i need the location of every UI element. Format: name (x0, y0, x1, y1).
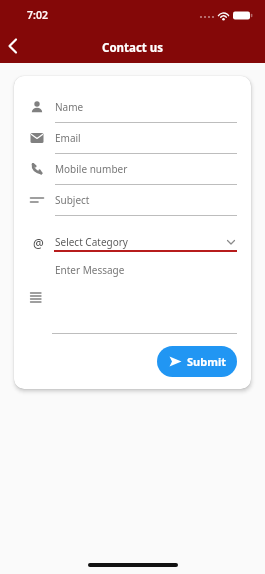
staticText: Enter Message (55, 263, 125, 277)
button[interactable]: Enter Message (30, 252, 237, 334)
staticText: Name (55, 100, 84, 114)
staticText: Submit (187, 354, 226, 369)
staticText: Email (55, 131, 81, 145)
button[interactable]: Mobile number (30, 154, 237, 185)
staticText: Select Category (55, 235, 128, 249)
button[interactable]: Name (30, 92, 237, 123)
button[interactable]: Email (30, 123, 237, 154)
button[interactable] (0, 33, 26, 59)
staticText: 7:02 (27, 8, 48, 22)
staticText: @ (33, 235, 44, 249)
button[interactable]: @ (30, 216, 237, 252)
button[interactable]: Subject (30, 185, 237, 216)
staticText: Contact us (102, 40, 164, 56)
staticText: Mobile number (55, 162, 128, 176)
button[interactable]: Submit (157, 346, 237, 377)
staticText: Subject (55, 193, 90, 207)
